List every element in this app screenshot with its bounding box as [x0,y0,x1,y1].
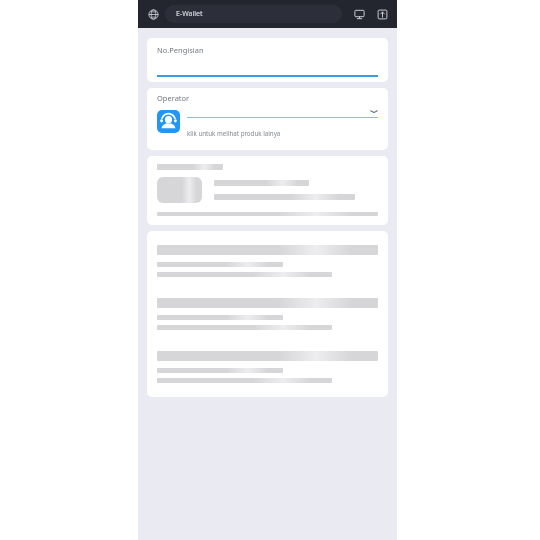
staticText: E-Wallet [176,9,203,19]
button[interactable]: E-Wallet [165,5,342,23]
staticText: klik untuk melihat produk lainya [187,129,281,137]
staticText: No.Pengisian [157,45,204,55]
button[interactable]: Site information [144,5,162,23]
button[interactable]: Operator [147,88,388,150]
button[interactable]: Open in app [373,5,391,23]
button[interactable]: Cast [350,5,368,23]
staticText: Operator [157,93,190,103]
button[interactable]: No.Pengisian [147,38,388,82]
